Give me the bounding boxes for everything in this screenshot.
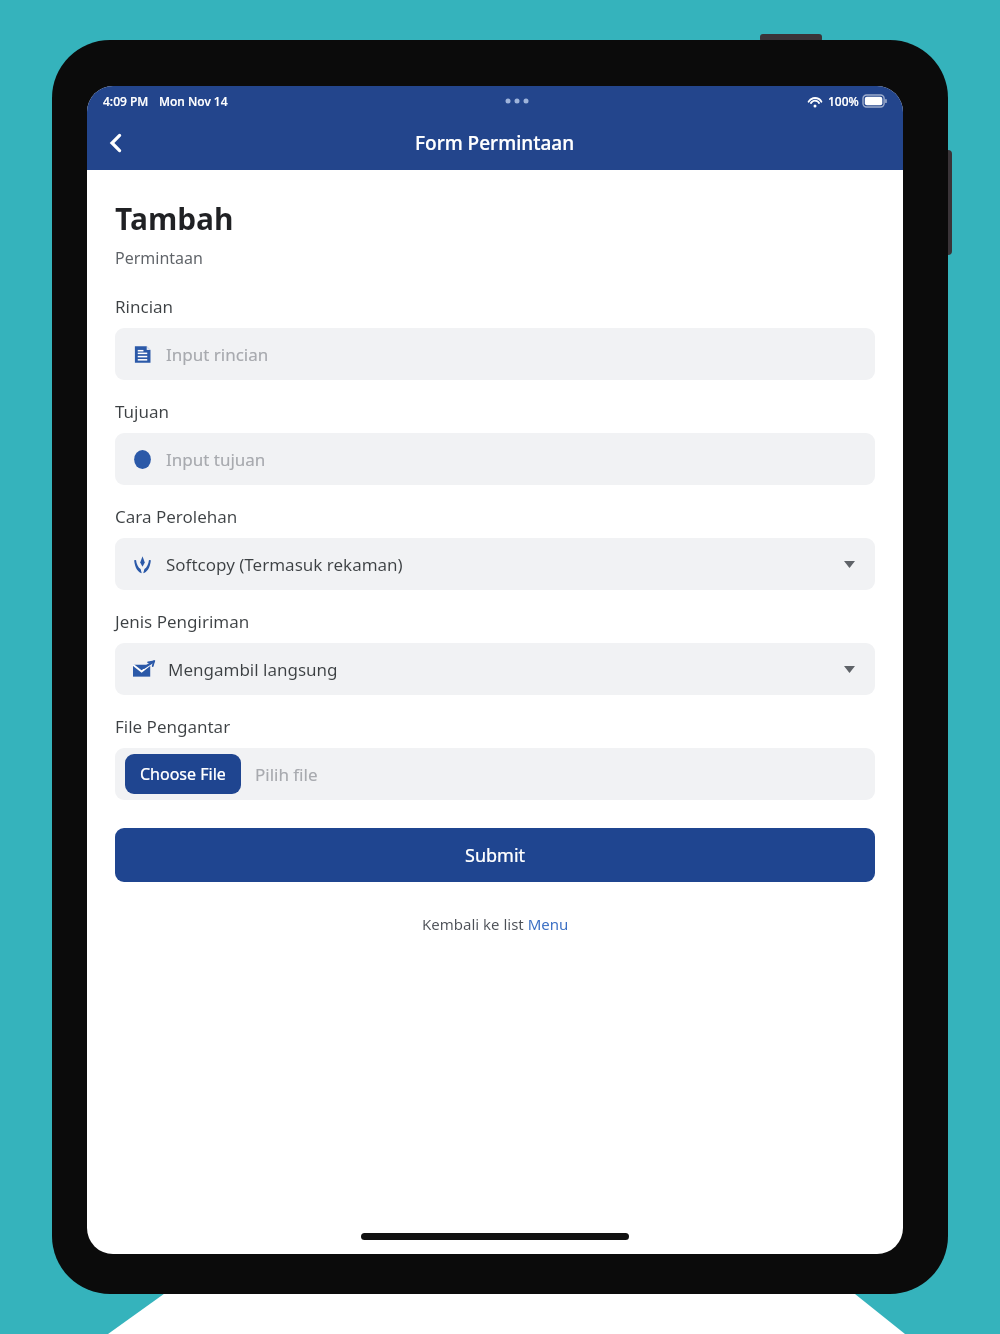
staticText: Input rincian	[166, 343, 269, 366]
button[interactable]: Kembali ke list Menu	[418, 910, 573, 938]
staticText: Rincian	[115, 295, 174, 318]
staticText: 4:09 PM	[103, 93, 149, 109]
button[interactable]: Submit	[115, 828, 875, 882]
button[interactable]: Input rincian	[115, 328, 875, 380]
button[interactable]: Input tujuan	[115, 433, 875, 485]
button[interactable]: Softcopy (Termasuk rekaman)	[115, 538, 875, 590]
staticText: Cara Perolehan	[115, 505, 238, 528]
staticText: Choose File	[140, 763, 226, 785]
staticText: Permintaan	[115, 247, 203, 269]
staticText: Jenis Pengiriman	[115, 610, 250, 633]
button[interactable]: Mengambil langsung	[115, 643, 875, 695]
staticText: Input tujuan	[166, 448, 266, 471]
staticText: Form Permintaan	[415, 130, 575, 156]
staticText: Pilih file	[255, 763, 318, 786]
staticText: Tambah	[115, 198, 234, 239]
staticText: Tujuan	[115, 400, 170, 423]
staticText: 100%	[828, 93, 859, 109]
staticText: Mengambil langsung	[168, 658, 338, 681]
staticText: Mon Nov 14	[159, 93, 228, 109]
staticText: Submit	[465, 843, 526, 868]
staticText: Softcopy (Termasuk rekaman)	[166, 553, 403, 576]
staticText: Kembali ke list Menu	[422, 914, 569, 934]
button[interactable]: Back	[93, 120, 139, 166]
button[interactable]: Choose File	[125, 754, 241, 794]
staticText: File Pengantar	[115, 715, 231, 738]
